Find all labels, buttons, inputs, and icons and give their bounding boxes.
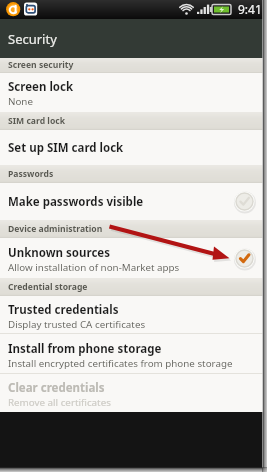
staticText: Credential storage [8, 281, 88, 293]
staticText: Screen security [8, 59, 74, 71]
staticText: Install encrypted certificates from phon… [8, 357, 233, 370]
staticText: Clear credentials [8, 380, 105, 396]
staticText: Trusted credentials [8, 302, 119, 318]
staticText: 9:41 [238, 1, 262, 17]
button[interactable]: Set up SIM card lock [0, 130, 267, 165]
other: Make passwords visible [233, 190, 256, 213]
staticText: Security [8, 30, 57, 48]
button[interactable]: Trusted credentials [0, 296, 267, 334]
button[interactable]: Clear credentials [0, 374, 267, 412]
button[interactable]: Unknown sources [0, 238, 267, 278]
staticText: Display trusted CA certificates [8, 318, 146, 331]
staticText: Install from phone storage [8, 341, 162, 357]
staticText: Screen lock [8, 79, 74, 95]
staticText: Allow installation of non-Market apps [8, 261, 180, 274]
staticText: SIM card lock [8, 115, 66, 127]
staticText: Unknown sources [8, 245, 110, 261]
staticText: Passwords [8, 168, 54, 180]
button[interactable]: Install from phone storage [0, 334, 267, 374]
button[interactable]: Make passwords visible [0, 183, 267, 220]
button[interactable]: Screen lock [0, 73, 267, 112]
staticText: Set up SIM card lock [8, 140, 124, 156]
staticText: Make passwords visible [8, 194, 144, 210]
staticText: None [8, 95, 33, 108]
staticText: Remove all certificates [8, 396, 111, 409]
staticText: Device administration [8, 223, 103, 235]
other: Unknown sources [233, 247, 256, 270]
